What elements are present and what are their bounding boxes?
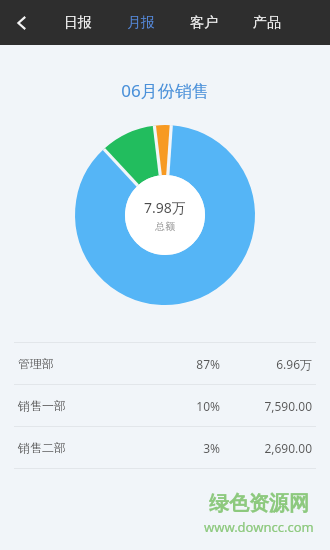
staticText: www.downcc.com <box>204 518 314 536</box>
button[interactable]: 管理部 <box>0 343 330 384</box>
staticText: 7,590.00 <box>220 398 312 414</box>
staticText: 2,690.00 <box>220 440 312 456</box>
staticText: 10% <box>142 398 220 414</box>
button[interactable]: 日报 <box>46 0 109 45</box>
staticText: 总额 <box>155 220 175 233</box>
staticText: 客户 <box>190 14 218 32</box>
button[interactable]: 销售二部 <box>0 427 330 468</box>
staticText: 87% <box>142 356 220 372</box>
staticText: 7.98万 <box>144 198 186 217</box>
staticText: 产品 <box>253 14 281 32</box>
staticText: 绿色资源网 <box>209 491 309 516</box>
staticText: 3% <box>142 440 220 456</box>
staticText: 日报 <box>64 14 92 32</box>
staticText: 6.96万 <box>220 356 312 372</box>
staticText: 销售一部 <box>18 398 66 413</box>
button[interactable]: 产品 <box>235 0 298 45</box>
staticText: 月报 <box>127 14 155 32</box>
staticText: 销售二部 <box>18 440 66 455</box>
button[interactable]: 月报 <box>109 0 172 45</box>
button[interactable]: 客户 <box>172 0 235 45</box>
button[interactable]: Back <box>0 1 44 45</box>
staticText: 管理部 <box>18 356 54 371</box>
button[interactable]: 销售一部 <box>0 385 330 426</box>
staticText: 06月份销售 <box>0 79 330 102</box>
